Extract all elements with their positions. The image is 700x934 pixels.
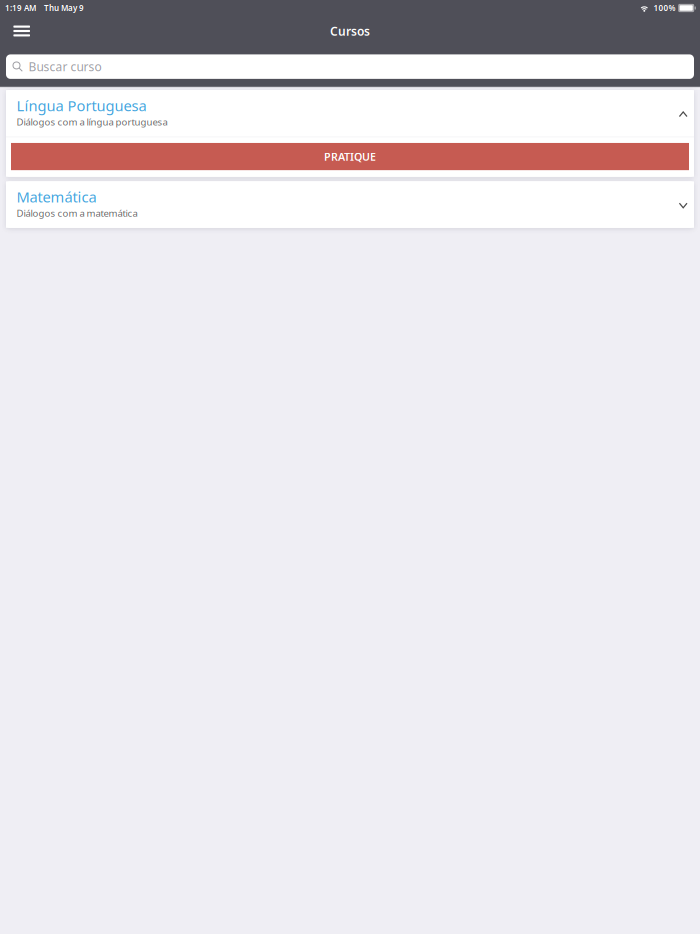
staticText: Matemática [17,187,97,207]
button[interactable]: Matemática [6,181,694,228]
staticText: Thu May 9 [44,3,84,13]
staticText: Buscar curso [28,59,101,75]
button[interactable]: Língua Portuguesa [6,90,694,137]
button[interactable]: PRATIQUE [11,143,689,170]
staticText: Diálogos com a língua portuguesa [17,115,168,128]
staticText: 100% [653,3,675,13]
staticText: Diálogos com a matemática [17,206,138,220]
staticText: Língua Portuguesa [17,96,147,115]
staticText: PRATIQUE [324,149,376,164]
button[interactable]: Menu [5,16,39,45]
staticText: Cursos [330,23,370,39]
staticText: 1:19 AM [5,3,36,13]
button[interactable]: Buscar curso [6,54,694,79]
